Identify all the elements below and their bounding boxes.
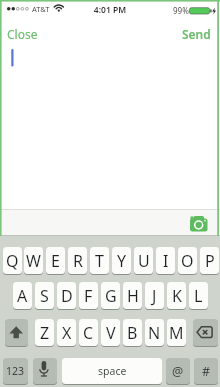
staticText: W (26, 250, 41, 272)
button[interactable]: H (123, 282, 142, 309)
button[interactable]: S (35, 282, 54, 309)
staticText: J (152, 285, 157, 307)
button[interactable]: Y (112, 247, 131, 274)
staticText: A (17, 285, 28, 307)
staticText: X (62, 322, 72, 344)
button[interactable]: A (13, 282, 32, 309)
button[interactable]: G (101, 282, 120, 309)
button[interactable]: N (145, 319, 164, 346)
staticText: N (148, 322, 161, 344)
button[interactable] (5, 319, 28, 346)
staticText: C (83, 322, 94, 344)
staticText: space (98, 364, 127, 378)
button[interactable]: K (167, 282, 186, 309)
staticText: U (138, 250, 150, 272)
staticText: 123 (6, 364, 25, 378)
staticText: AT&T (32, 4, 50, 14)
staticText: I (163, 250, 169, 272)
button[interactable] (193, 319, 218, 346)
staticText: Y (117, 250, 127, 272)
button[interactable]: @ (166, 358, 190, 384)
staticText: S (40, 285, 49, 307)
staticText: R (73, 250, 83, 272)
staticText: K (172, 285, 182, 307)
staticText: Close (7, 26, 38, 42)
button[interactable]: L (189, 282, 208, 309)
staticText: Q (6, 250, 19, 272)
button[interactable]: U (134, 247, 153, 274)
staticText: G (105, 285, 117, 307)
button[interactable]: O (178, 247, 197, 274)
staticText: Send (182, 26, 211, 42)
staticText: P (205, 250, 215, 272)
button[interactable]: T (90, 247, 109, 274)
button[interactable]: # (194, 358, 218, 384)
button[interactable]: Q (3, 247, 22, 274)
staticText: 99% (173, 5, 189, 16)
button[interactable]: B (123, 319, 142, 346)
staticText: T (95, 250, 104, 272)
button[interactable]: F (79, 282, 98, 309)
button[interactable]: W (24, 247, 43, 274)
button[interactable]: J (145, 282, 164, 309)
button[interactable]: D (57, 282, 76, 309)
staticText: D (61, 285, 73, 307)
button[interactable]: V (101, 319, 120, 346)
button[interactable]: Send (184, 24, 213, 40)
staticText: 4:01 PM (0, 4, 220, 16)
button[interactable]: I (156, 247, 175, 274)
staticText: @ (172, 363, 184, 380)
button[interactable]: P (200, 247, 219, 274)
staticText: E (51, 250, 60, 272)
staticText: B (127, 322, 138, 344)
button[interactable]: X (57, 319, 76, 346)
staticText: F (84, 285, 93, 307)
button[interactable] (185, 211, 212, 235)
button[interactable]: 123 (3, 358, 28, 384)
button[interactable] (33, 358, 57, 384)
button[interactable]: Close (4, 24, 35, 40)
button[interactable]: M (167, 319, 186, 346)
button[interactable]: R (68, 247, 87, 274)
staticText: L (194, 285, 203, 307)
staticText: M (169, 322, 184, 344)
staticText: H (127, 285, 139, 307)
staticText: # (202, 363, 211, 380)
staticText: V (106, 322, 116, 344)
button[interactable]: E (46, 247, 65, 274)
button[interactable]: C (79, 319, 98, 346)
button[interactable]: Z (35, 319, 54, 346)
staticText: Z (40, 322, 50, 344)
staticText: O (181, 250, 194, 272)
button[interactable]: space (62, 358, 162, 384)
